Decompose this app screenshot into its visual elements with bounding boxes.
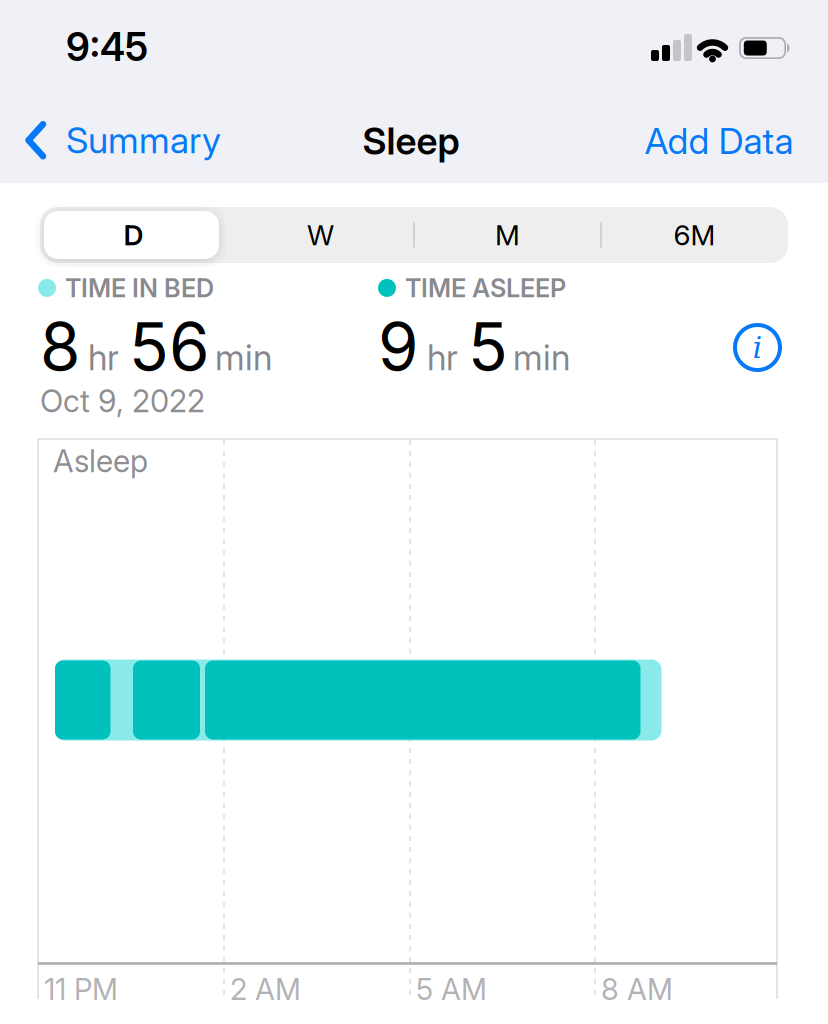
button[interactable]: W (227, 207, 414, 263)
staticText: 6M (673, 218, 715, 251)
staticText: 8 (40, 308, 80, 385)
staticText: W (307, 218, 334, 251)
staticText: Oct 9, 2022 (40, 383, 205, 419)
staticText: 5 AM (416, 972, 487, 1007)
button[interactable]: 6M (601, 207, 788, 263)
staticText: 9:45 (66, 24, 148, 70)
staticText: min (215, 337, 272, 378)
staticText: i (752, 330, 762, 365)
staticText: hr (427, 337, 458, 378)
staticText: TIME IN BED (65, 273, 214, 303)
staticText: TIME ASLEEP (405, 273, 566, 303)
staticText: Summary (66, 119, 221, 161)
staticText: min (513, 337, 570, 378)
button[interactable]: Summary (25, 119, 221, 161)
staticText: hr (88, 337, 119, 378)
staticText: 56 (129, 308, 210, 385)
staticText: 11 PM (44, 972, 118, 1007)
button[interactable]: Add Data (644, 120, 793, 162)
button[interactable]: M (414, 207, 601, 263)
staticText: Add Data (644, 120, 793, 162)
button[interactable]: i (733, 323, 782, 372)
staticText: 8 AM (601, 972, 673, 1007)
staticText: D (123, 218, 143, 251)
staticText: 9 (378, 308, 419, 385)
staticText: M (495, 218, 520, 251)
button[interactable]: D (40, 207, 227, 263)
staticText: Asleep (53, 443, 148, 479)
staticText: 2 AM (230, 972, 301, 1007)
staticText: Sleep (362, 119, 459, 163)
staticText: 5 (468, 308, 508, 385)
